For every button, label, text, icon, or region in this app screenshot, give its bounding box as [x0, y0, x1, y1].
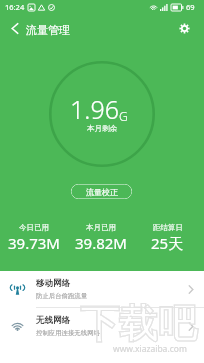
staticText: 控制应用连接无线网络	[36, 329, 100, 337]
staticText: 1.96	[70, 92, 119, 126]
staticText: 16:24	[5, 2, 25, 12]
staticText: 本月已用	[86, 223, 116, 232]
staticText: 下载吧	[80, 299, 197, 348]
staticText: 流量管理	[26, 23, 70, 37]
button[interactable]: 流量校正	[71, 184, 132, 199]
staticText: 流量校正	[86, 187, 118, 197]
button[interactable]: 移动网络	[0, 271, 204, 307]
staticText: 距结算日	[153, 223, 183, 232]
staticText: 今日已用	[19, 223, 49, 232]
staticText: 移动网络	[36, 278, 70, 289]
staticText: 39.73M	[8, 233, 60, 253]
staticText: 25天	[151, 233, 184, 253]
staticText: 69	[186, 2, 195, 12]
button[interactable]: 无线网络	[0, 308, 204, 344]
staticText: G	[119, 108, 128, 124]
staticText: 防止后台偷跑流量	[36, 292, 88, 300]
button[interactable]: Settings	[173, 17, 195, 39]
staticText: 本月剩余	[87, 124, 118, 134]
staticText: 39.82M	[75, 233, 127, 253]
button[interactable]: Back	[4, 17, 26, 39]
staticText: 无线网络	[36, 315, 70, 326]
staticText: www.xiazaiba.com	[113, 343, 187, 355]
